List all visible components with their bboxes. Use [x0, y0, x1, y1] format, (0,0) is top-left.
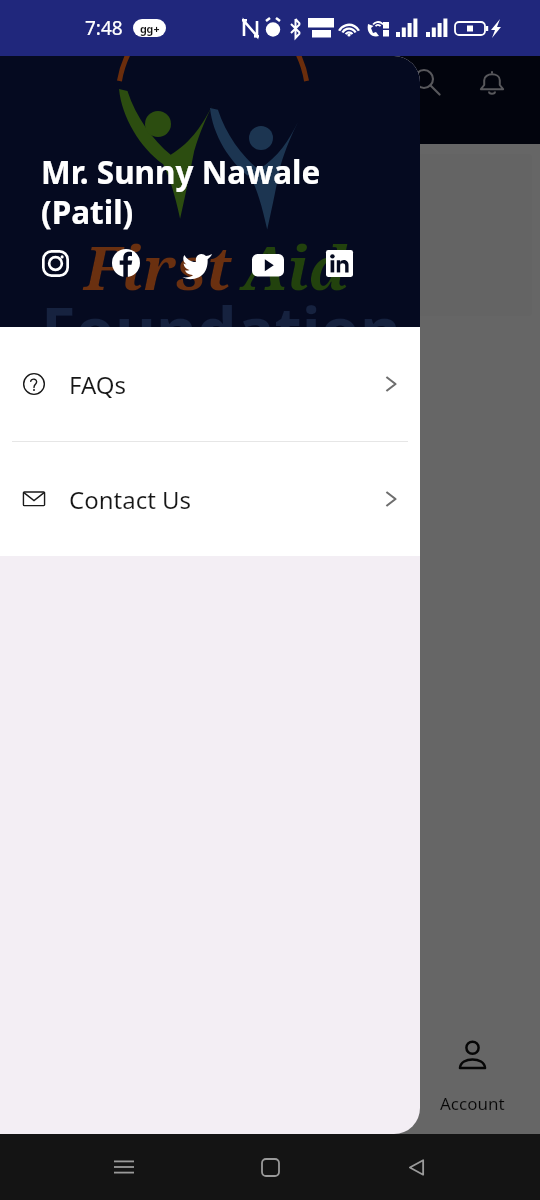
button[interactable]: Search [401, 56, 453, 108]
staticText: Account [440, 1092, 505, 1115]
staticText: gg+ [140, 21, 160, 36]
button[interactable]: Account [405, 1040, 540, 1115]
button[interactable]: FAQs [0, 327, 420, 441]
button[interactable]: Notifications [466, 56, 518, 108]
staticText: 7:48 [85, 15, 123, 41]
staticText: FAQs [69, 368, 127, 401]
button[interactable]: LinkedIn [318, 242, 360, 284]
button[interactable]: Facebook [105, 242, 147, 284]
staticText: BUY ₹999 [32, 261, 143, 294]
staticText: Contact Us [69, 483, 192, 516]
staticText: Experience with 1000s old Students... [32, 199, 346, 224]
button[interactable]: Back [394, 1145, 438, 1189]
staticText: (Patil) [41, 190, 134, 233]
button[interactable]: Home [248, 1145, 292, 1189]
button[interactable]: Recents [102, 1145, 146, 1189]
button[interactable]: Twitter [176, 242, 218, 284]
button[interactable]: Instagram [34, 242, 76, 284]
staticText: First Aid Foundation in action [32, 164, 313, 191]
staticText: Foundation [41, 286, 401, 372]
staticText: Mr. Sunny Nawale [41, 150, 321, 193]
button[interactable]: YouTube [247, 242, 289, 284]
staticText: First [84, 226, 232, 308]
staticText: Aid [242, 226, 349, 308]
button[interactable]: Contact Us [0, 442, 420, 556]
